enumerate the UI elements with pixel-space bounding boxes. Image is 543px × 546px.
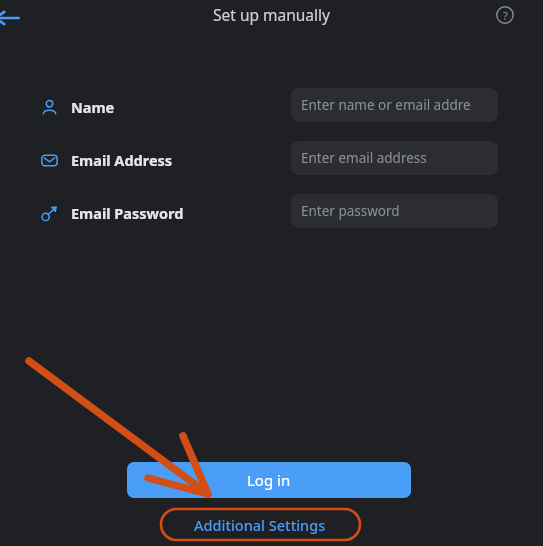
button[interactable]: Enter name or email addre [291, 88, 498, 122]
button[interactable]: Additional Settings [160, 508, 360, 541]
staticText: Additional Settings [194, 515, 326, 535]
staticText: Email Address [71, 150, 173, 170]
staticText: Name [71, 97, 115, 117]
staticText: Enter name or email addre [301, 96, 471, 114]
button[interactable]: Enter password [291, 194, 498, 228]
button[interactable]: Log in [127, 462, 411, 498]
staticText: Set up manually [213, 4, 330, 25]
button[interactable]: Help [493, 3, 517, 27]
button[interactable]: Enter email address [291, 141, 498, 175]
staticText: Email Password [71, 203, 184, 223]
staticText: ? [503, 8, 508, 23]
button[interactable]: Back [0, 4, 20, 32]
staticText: Enter email address [301, 149, 427, 167]
staticText: Log in [247, 470, 291, 490]
staticText: Enter password [301, 202, 400, 220]
